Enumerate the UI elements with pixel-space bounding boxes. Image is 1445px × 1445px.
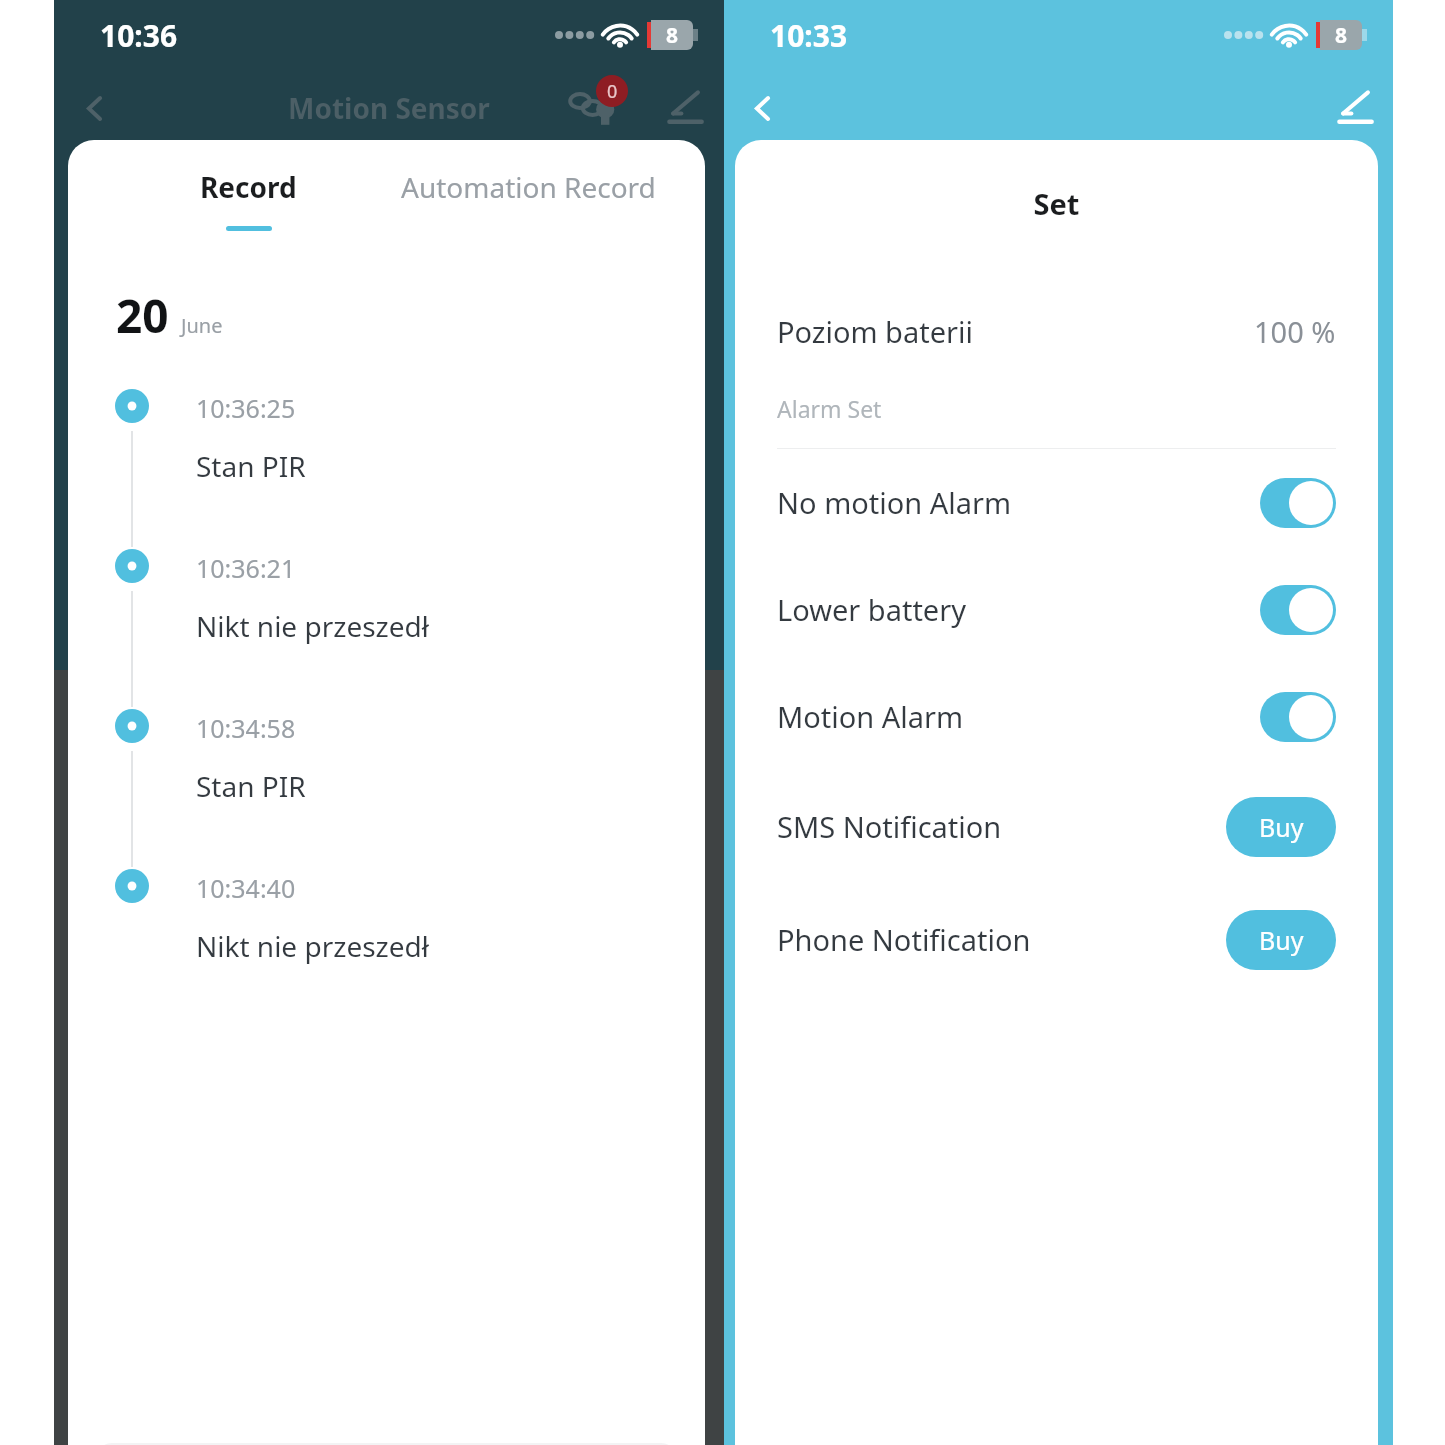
staticText: 10:33 — [770, 15, 848, 56]
button[interactable]: Edit — [1324, 76, 1388, 140]
button[interactable]: Edit — [654, 76, 718, 140]
button[interactable]: Back — [62, 76, 126, 140]
button[interactable]: Back — [730, 76, 794, 140]
staticText: Alarm Set — [777, 393, 882, 424]
staticText: Record — [200, 168, 297, 206]
staticText: Buy — [1259, 810, 1304, 844]
staticText: SMS Notification — [777, 807, 1002, 846]
staticText: 20 — [116, 284, 169, 347]
staticText: 0 — [607, 79, 618, 104]
button[interactable]: Poziom baterii — [777, 301, 1336, 361]
staticText: 10:36:25 — [196, 391, 296, 425]
staticText: Stan PIR — [196, 447, 306, 485]
button[interactable]: Automation Record — [373, 168, 683, 228]
staticText: 10:34:58 — [196, 711, 296, 745]
staticText: June — [181, 312, 223, 339]
staticText: 10:34:40 — [196, 871, 296, 905]
staticText: 100 % — [1254, 312, 1336, 351]
staticText: 8 — [1335, 21, 1348, 50]
button[interactable]: Lower battery — [777, 556, 1336, 663]
staticText: Nikt nie przeszedł — [196, 927, 429, 965]
button[interactable]: Linked devices — [566, 73, 636, 143]
staticText: Set — [735, 184, 1378, 223]
button[interactable]: No motion Alarm — [777, 449, 1336, 556]
staticText: 10:36 — [100, 15, 178, 56]
staticText: 8 — [666, 21, 679, 50]
button[interactable]: Motion Alarm — [777, 663, 1336, 770]
staticText: Lower battery — [777, 590, 966, 629]
staticText: Stan PIR — [196, 767, 306, 805]
button[interactable]: Buy — [1226, 910, 1336, 970]
button[interactable]: Buy — [1226, 797, 1336, 857]
staticText: Nikt nie przeszedł — [196, 607, 429, 645]
staticText: Phone Notification — [777, 920, 1031, 959]
staticText: Motion Alarm — [777, 697, 964, 736]
staticText: Buy — [1259, 923, 1304, 957]
staticText: 10:36:21 — [196, 551, 296, 585]
staticText: Poziom baterii — [777, 312, 973, 351]
staticText: Motion Sensor — [288, 89, 490, 127]
button[interactable]: Record — [123, 168, 373, 248]
staticText: Automation Record — [401, 168, 656, 206]
staticText: No motion Alarm — [777, 483, 1012, 522]
